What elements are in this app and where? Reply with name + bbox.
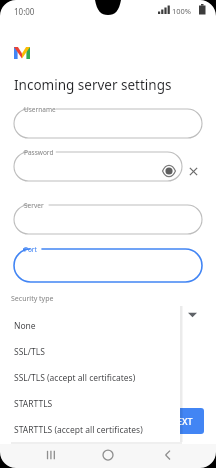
staticText: Security type <box>11 294 54 304</box>
staticText: Server <box>24 201 44 210</box>
staticText: STARTTLS <box>14 398 53 410</box>
button[interactable]: SSL/TLS (accept all certificates) <box>9 365 180 391</box>
button[interactable]: STARTTLS <box>9 391 180 417</box>
button[interactable]: Clear password <box>187 165 200 178</box>
button[interactable]: None <box>9 313 180 339</box>
staticText: STARTTLS (accept all certificates) <box>14 424 143 436</box>
button[interactable]: NEXT <box>158 408 204 434</box>
button[interactable]: STARTTLS (accept all certificates) <box>9 417 180 442</box>
staticText: Password <box>24 148 54 157</box>
staticText: SSL/TLS <box>14 346 45 358</box>
staticText: 10:00 <box>14 6 35 17</box>
button[interactable]: Server <box>14 205 202 234</box>
button[interactable]: Security type dropdown <box>188 310 197 319</box>
button[interactable]: Username <box>14 109 202 138</box>
staticText: 100% <box>172 6 192 16</box>
button[interactable]: Password <box>14 152 182 181</box>
button[interactable]: Show password <box>162 164 176 178</box>
staticText: Username <box>24 105 56 114</box>
staticText: None <box>14 320 36 332</box>
staticText: NEXT <box>170 415 193 427</box>
staticText: Port <box>24 245 37 254</box>
button[interactable]: Port <box>14 249 202 282</box>
button[interactable]: SSL/TLS <box>9 339 180 365</box>
staticText: Incoming server settings <box>14 76 172 94</box>
staticText: SSL/TLS (accept all certificates) <box>14 372 136 384</box>
